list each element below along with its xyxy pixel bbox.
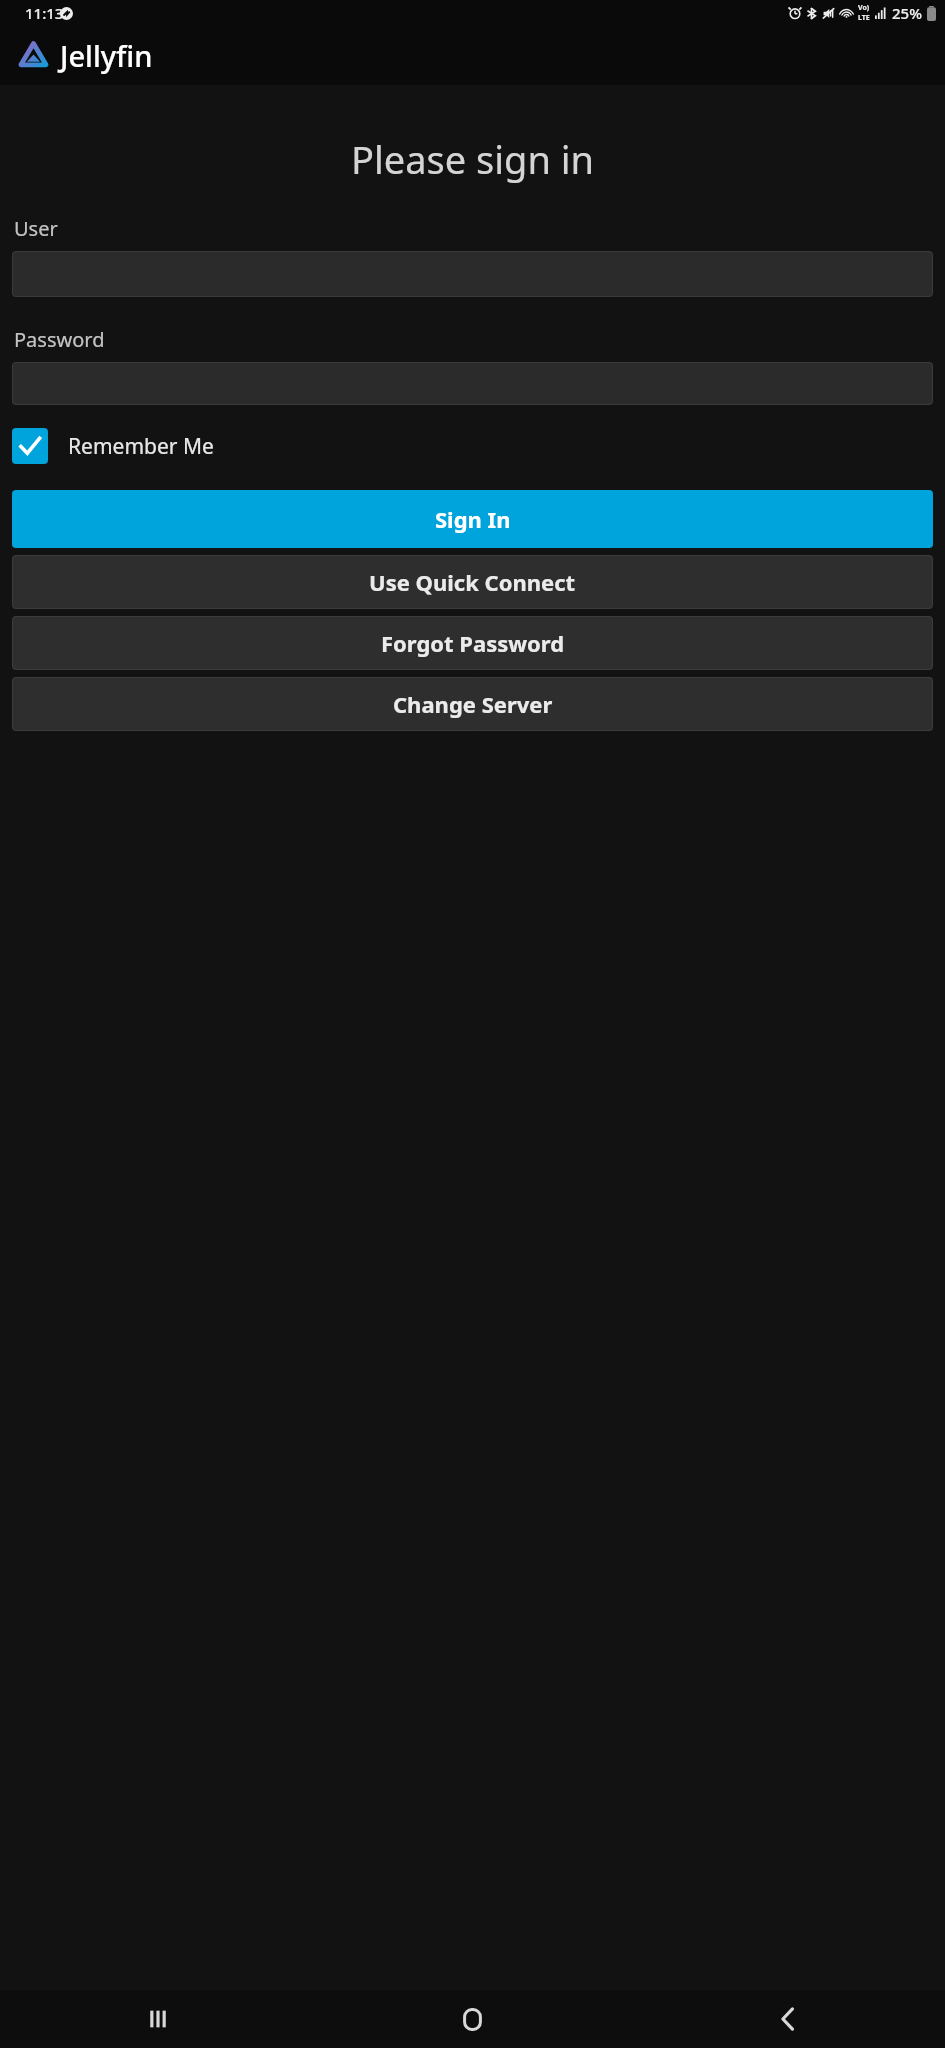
button[interactable] [12, 251, 933, 297]
button[interactable]: Back [630, 1990, 945, 2048]
button[interactable]: Forgot Password [12, 616, 933, 670]
button[interactable]: Recents [0, 1990, 315, 2048]
staticText: Use Quick Connect [369, 567, 576, 597]
staticText: Sign In [435, 504, 511, 534]
staticText: Change Server [393, 689, 553, 719]
staticText: Jellyfin [60, 36, 153, 75]
button[interactable]: Sign In [12, 490, 933, 548]
staticText: Remember Me [68, 432, 214, 461]
staticText: 25% [892, 3, 922, 23]
staticText: Forgot Password [381, 628, 565, 658]
staticText: Password [14, 326, 105, 353]
staticText: LTE [858, 13, 870, 23]
staticText: Vo) [858, 3, 870, 13]
button[interactable]: Home [315, 1990, 630, 2048]
staticText: User [14, 215, 58, 242]
button[interactable]: Use Quick Connect [12, 555, 933, 609]
staticText: 11:13 [25, 3, 64, 23]
button[interactable]: Remember Me [12, 427, 214, 465]
button[interactable]: Change Server [12, 677, 933, 731]
button[interactable] [12, 362, 933, 405]
staticText: Please sign in [0, 133, 945, 185]
